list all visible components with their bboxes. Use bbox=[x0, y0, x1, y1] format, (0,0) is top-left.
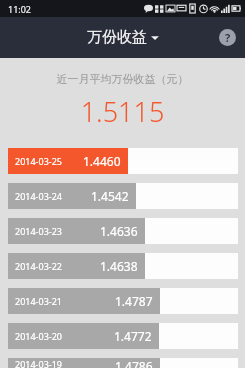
staticText: 2014-03-20 bbox=[15, 330, 62, 342]
button[interactable]: 2014-03-22 bbox=[8, 253, 238, 279]
button[interactable]: 2014-03-21 bbox=[8, 288, 238, 314]
button[interactable]: 2014-03-19 bbox=[8, 358, 238, 368]
staticText: 1.4772 bbox=[114, 328, 152, 344]
staticText: 2014-03-22 bbox=[15, 260, 62, 272]
staticText: 2014-03-25 bbox=[15, 155, 62, 167]
staticText: 2014-03-23 bbox=[15, 225, 62, 237]
button[interactable]: 2014-03-23 bbox=[8, 218, 238, 244]
staticText: 2014-03-21 bbox=[15, 295, 62, 307]
staticText: 1.4786 bbox=[115, 358, 153, 368]
staticText: 1.4460 bbox=[83, 153, 121, 169]
staticText: 近一月平均万份收益（元） bbox=[0, 72, 245, 86]
staticText: 1.4636 bbox=[100, 223, 138, 239]
staticText: ? bbox=[225, 30, 231, 45]
button[interactable]: Help bbox=[219, 29, 236, 46]
staticText: 1.4787 bbox=[115, 293, 153, 309]
staticText: 万份收益 bbox=[87, 28, 147, 47]
staticText: 11:02 bbox=[8, 3, 32, 15]
button[interactable]: 万份收益 bbox=[81, 24, 165, 51]
staticText: 1.4542 bbox=[91, 188, 129, 204]
button[interactable]: 2014-03-25 bbox=[8, 148, 238, 174]
staticText: 1.5115 bbox=[0, 93, 245, 130]
staticText: 2014-03-24 bbox=[15, 190, 62, 202]
staticText: 2014-03-19 bbox=[15, 358, 62, 368]
button[interactable]: 2014-03-20 bbox=[8, 323, 238, 349]
button[interactable]: 2014-03-24 bbox=[8, 183, 238, 209]
staticText: 1.4638 bbox=[100, 258, 138, 274]
